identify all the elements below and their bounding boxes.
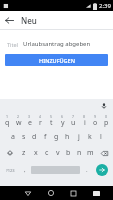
button[interactable]: Zurück [0, 11, 19, 30]
button[interactable]: h [62, 130, 73, 144]
staticText: r [39, 118, 42, 128]
button[interactable]: g [51, 130, 62, 144]
staticText: k [88, 132, 92, 142]
button[interactable]: Löschen [97, 146, 111, 160]
staticText: i [84, 118, 86, 128]
button[interactable]: 0 [101, 113, 112, 128]
button[interactable]: d [29, 130, 40, 144]
staticText: a [11, 132, 15, 142]
staticText: l [100, 132, 102, 142]
staticText: Neu [21, 15, 37, 26]
button[interactable]: a [7, 130, 18, 144]
button[interactable]: 4 [35, 113, 46, 128]
staticText: ?123 [6, 168, 15, 173]
button[interactable]: l [95, 130, 106, 144]
staticText: 2 [17, 114, 20, 119]
button[interactable]: Tastatur wechseln [85, 186, 108, 200]
button[interactable]: . [81, 162, 92, 178]
staticText: u [71, 118, 76, 128]
button[interactable]: m [85, 146, 96, 160]
button[interactable]: HINZUFÜGEN [5, 54, 108, 66]
staticText: v [56, 148, 60, 158]
button[interactable]: Spracheingabe [99, 101, 109, 111]
staticText: Titel [7, 41, 18, 48]
button[interactable]: 7 [68, 113, 79, 128]
staticText: b [66, 148, 71, 158]
staticText: w [16, 118, 22, 128]
staticText: q [5, 118, 10, 128]
button[interactable]: ?123 [2, 162, 18, 178]
staticText: 8 [83, 114, 86, 119]
staticText: c [45, 148, 49, 158]
staticText: e [28, 118, 32, 128]
button[interactable]: x [30, 146, 41, 160]
button[interactable]: 3 [24, 113, 35, 128]
button[interactable]: b [63, 146, 74, 160]
staticText: 7 [72, 114, 75, 119]
button[interactable]: Übersicht [62, 186, 85, 200]
staticText: g [54, 132, 59, 142]
staticText: 2:39 [99, 2, 111, 10]
button[interactable]: v [52, 146, 63, 160]
staticText: 3 [28, 114, 31, 119]
button[interactable]: 5 [46, 113, 57, 128]
staticText: z [22, 148, 26, 158]
button[interactable]: n [74, 146, 85, 160]
staticText: h [65, 132, 70, 142]
staticText: 6 [61, 114, 64, 119]
button[interactable]: Zurück [16, 186, 39, 200]
button[interactable]: Startbildschirm [39, 186, 62, 200]
staticText: , [24, 166, 26, 174]
staticText: d [32, 132, 37, 142]
staticText: m [87, 148, 94, 158]
button[interactable]: 2 [13, 113, 24, 128]
button[interactable]: 1 [1, 113, 13, 128]
button[interactable]: s [18, 130, 29, 144]
button[interactable]: f [40, 130, 51, 144]
staticText: 9 [94, 114, 97, 119]
staticText: y [61, 118, 65, 128]
staticText: n [77, 148, 82, 158]
staticText: t [50, 118, 53, 128]
staticText: p [104, 118, 109, 128]
staticText: 0 [105, 114, 108, 119]
button[interactable]: j [73, 130, 84, 144]
button[interactable]: c [41, 146, 52, 160]
staticText: o [93, 118, 98, 128]
button[interactable]: 8 [79, 113, 90, 128]
button[interactable]: z [18, 146, 30, 160]
staticText: 1 [6, 114, 9, 119]
staticText: HINZUFÜGEN [39, 57, 75, 64]
button[interactable]: k [84, 130, 95, 144]
button[interactable]: Senden [96, 164, 108, 176]
staticText: s [22, 132, 26, 142]
button[interactable]: 9 [90, 113, 101, 128]
staticText: x [34, 148, 38, 158]
staticText: j [78, 132, 80, 142]
button[interactable]: 6 [57, 113, 68, 128]
staticText: Urlaubsantrag abgeben [23, 40, 91, 48]
button[interactable]: Umschalt [2, 146, 17, 160]
staticText: 5 [50, 114, 53, 119]
staticText: 4 [39, 114, 42, 119]
staticText: . [86, 166, 88, 174]
button[interactable]: Titel [0, 40, 113, 48]
staticText: f [44, 132, 47, 142]
button[interactable]: , [19, 162, 30, 178]
